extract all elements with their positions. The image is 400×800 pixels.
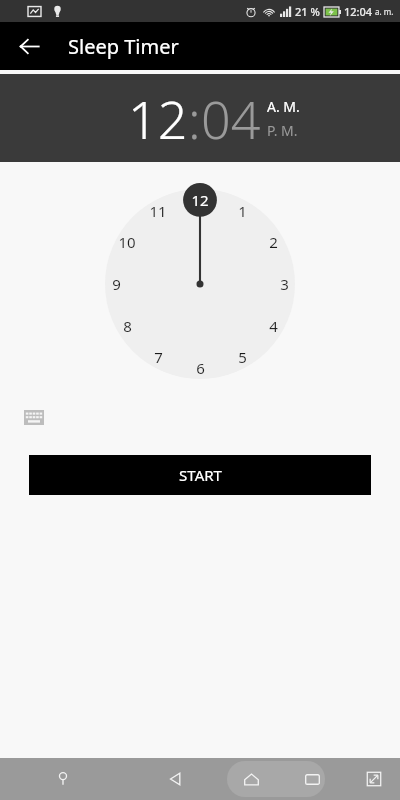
staticText: 9 — [112, 274, 121, 294]
button[interactable]: 12 — [128, 83, 188, 154]
button[interactable]: Back — [12, 29, 46, 63]
button[interactable]: P. M. — [267, 121, 298, 140]
button[interactable]: A. M. — [267, 97, 300, 116]
staticText: START — [179, 465, 222, 485]
staticText: : — [188, 83, 201, 154]
staticText: Sleep Timer — [68, 33, 179, 60]
staticText: 21 % — [295, 4, 320, 19]
staticText: a. m. — [375, 6, 394, 17]
button[interactable]: Resize screen — [347, 758, 400, 800]
button[interactable]: 12 — [105, 189, 295, 379]
staticText: 7 — [154, 347, 163, 367]
staticText: 2 — [269, 232, 278, 252]
staticText: 11 — [149, 201, 167, 221]
staticText: 4 — [269, 316, 278, 336]
button[interactable]: Back — [125, 758, 225, 800]
staticText: 10 — [118, 232, 136, 252]
staticText: 6 — [196, 358, 205, 378]
button[interactable]: 04 — [201, 83, 261, 154]
staticText: 8 — [123, 316, 132, 336]
button[interactable]: START — [29, 455, 371, 495]
button[interactable]: Home — [225, 758, 277, 800]
staticText: 5 — [238, 347, 247, 367]
button[interactable]: Assistant — [0, 758, 125, 800]
staticText: 3 — [280, 274, 289, 294]
staticText: 1 — [238, 201, 247, 221]
staticText: 12 — [191, 190, 209, 210]
button[interactable]: Switch to keyboard input — [20, 403, 48, 431]
button[interactable]: Recent apps — [277, 758, 347, 800]
staticText: 12:04 — [344, 4, 373, 19]
